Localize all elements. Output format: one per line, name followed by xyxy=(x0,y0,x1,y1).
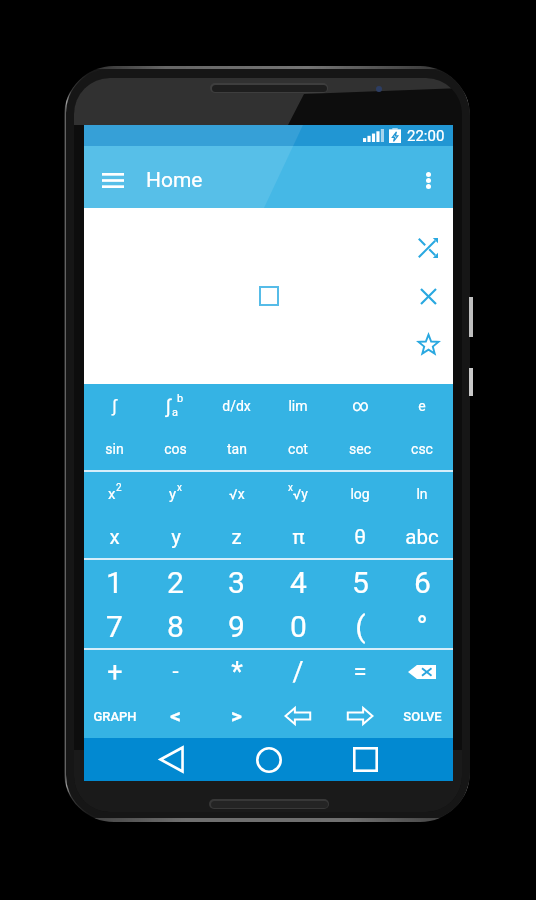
button[interactable]: e xyxy=(391,384,453,427)
button[interactable]: Home xyxy=(231,738,306,781)
button[interactable]: π xyxy=(267,515,329,558)
staticText: x xyxy=(109,525,120,549)
staticText: ln xyxy=(416,486,428,502)
button[interactable]: sec xyxy=(329,427,391,470)
staticText: π xyxy=(292,525,305,549)
staticText: 2 xyxy=(116,482,122,494)
button[interactable]: Favourite xyxy=(414,330,442,358)
staticText: csc xyxy=(411,441,433,457)
button[interactable]: x xyxy=(84,472,145,515)
button[interactable]: cos xyxy=(145,427,206,470)
staticText: 2 xyxy=(167,565,184,600)
button[interactable]: 9 xyxy=(206,604,267,648)
staticText: θ xyxy=(354,525,366,549)
staticText: d/dx xyxy=(222,398,251,414)
button[interactable]: Backspace xyxy=(391,650,453,694)
button[interactable]: θ xyxy=(329,515,391,558)
button[interactable]: √x xyxy=(206,472,267,515)
button[interactable]: csc xyxy=(391,427,453,470)
button[interactable]: Clear xyxy=(414,282,442,310)
button[interactable]: cot xyxy=(267,427,329,470)
staticText: y xyxy=(169,485,177,503)
staticText: √y xyxy=(293,486,308,502)
button[interactable]: y xyxy=(145,515,206,558)
button[interactable]: ln xyxy=(391,472,453,515)
button[interactable]: abc xyxy=(391,515,453,558)
staticText: y xyxy=(171,525,181,549)
button[interactable]: 7 xyxy=(84,604,145,648)
button[interactable]: 4 xyxy=(267,560,329,604)
staticText: 5 xyxy=(352,565,369,600)
button[interactable]: ° xyxy=(391,604,453,648)
button[interactable]: Shuffle xyxy=(414,234,442,262)
staticText: ∞ xyxy=(352,396,369,415)
staticText: x xyxy=(288,482,293,494)
staticText: 9 xyxy=(228,609,245,644)
button[interactable]: 3 xyxy=(206,560,267,604)
staticText: 1 xyxy=(106,565,123,600)
button[interactable]: sin xyxy=(84,427,145,470)
button[interactable]: 0 xyxy=(267,604,329,648)
button[interactable]: * xyxy=(206,650,267,694)
staticText: 8 xyxy=(167,609,184,644)
staticText: sec xyxy=(349,441,371,457)
staticText: z xyxy=(231,525,242,549)
button[interactable]: 5 xyxy=(329,560,391,604)
staticText: abc xyxy=(405,525,439,549)
staticText: tan xyxy=(227,441,247,457)
staticText: cot xyxy=(288,441,308,457)
button[interactable]: < xyxy=(145,694,206,738)
button[interactable]: lim xyxy=(267,384,329,427)
staticText: sin xyxy=(105,441,124,457)
staticText: < xyxy=(170,704,181,729)
button[interactable]: x xyxy=(84,515,145,558)
button[interactable]: = xyxy=(329,650,391,694)
button[interactable]: ∞ xyxy=(329,384,391,427)
staticText: √x xyxy=(229,486,245,502)
staticText: cos xyxy=(164,441,187,457)
button[interactable]: ∫ xyxy=(84,384,145,427)
staticText: GRAPH xyxy=(93,709,137,724)
staticText: lim xyxy=(288,398,308,414)
button[interactable]: - xyxy=(145,650,206,694)
staticText: ( xyxy=(355,609,366,644)
staticText: ° xyxy=(416,609,428,644)
button[interactable]: x xyxy=(267,472,329,515)
button[interactable]: d/dx xyxy=(206,384,267,427)
staticText: a xyxy=(172,406,178,419)
staticText: x xyxy=(108,485,116,503)
staticText: ∫ xyxy=(166,395,171,417)
staticText: / xyxy=(292,656,304,688)
button[interactable]: SOLVE xyxy=(391,694,453,738)
staticText: 7 xyxy=(106,609,123,644)
button[interactable]: z xyxy=(206,515,267,558)
button[interactable]: Navigation menu xyxy=(91,158,135,202)
staticText: - xyxy=(172,659,179,685)
staticText: log xyxy=(350,486,370,502)
staticText: 4 xyxy=(290,565,307,600)
staticText: e xyxy=(418,398,426,414)
button[interactable]: log xyxy=(329,472,391,515)
staticText: SOLVE xyxy=(403,709,442,724)
button[interactable]: tan xyxy=(206,427,267,470)
button[interactable]: GRAPH xyxy=(84,694,145,738)
button[interactable]: Move right xyxy=(329,694,391,738)
button[interactable]: Move left xyxy=(267,694,329,738)
button[interactable]: + xyxy=(84,650,145,694)
staticText: Home xyxy=(146,168,203,193)
staticText: b xyxy=(177,392,184,405)
button[interactable]: ∫ xyxy=(145,384,206,427)
button[interactable]: More options xyxy=(406,158,450,202)
button[interactable]: y xyxy=(145,472,206,515)
button[interactable]: > xyxy=(206,694,267,738)
staticText: > xyxy=(231,704,242,729)
staticText: 6 xyxy=(414,565,431,600)
button[interactable]: Recent apps xyxy=(328,738,403,781)
button[interactable]: ( xyxy=(329,604,391,648)
button[interactable]: 2 xyxy=(145,560,206,604)
button[interactable]: 8 xyxy=(145,604,206,648)
button[interactable]: Back xyxy=(134,738,209,781)
button[interactable]: 1 xyxy=(84,560,145,604)
button[interactable]: / xyxy=(267,650,329,694)
button[interactable]: 6 xyxy=(391,560,453,604)
